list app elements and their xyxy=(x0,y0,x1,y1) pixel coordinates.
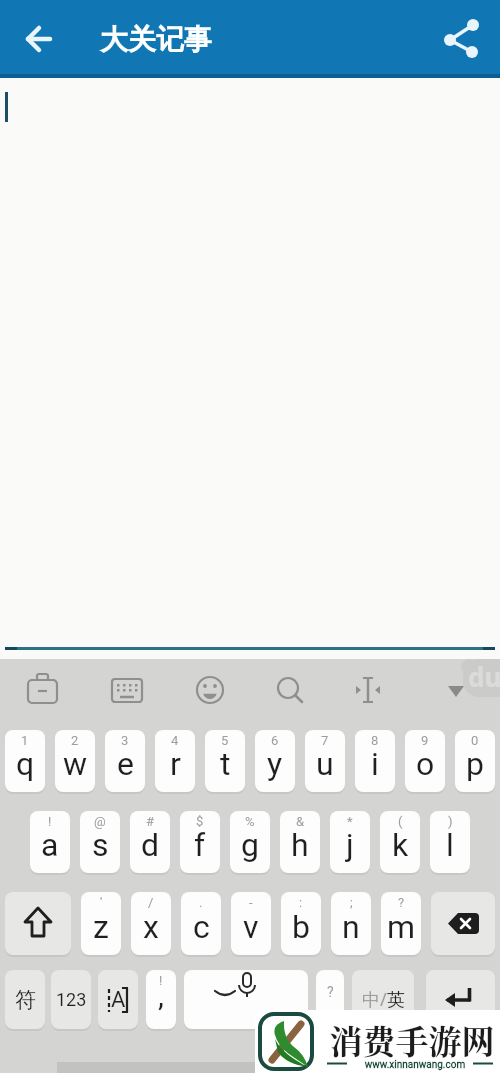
button[interactable]: ( xyxy=(380,811,420,873)
button[interactable]: ? xyxy=(316,970,344,1029)
button[interactable]: ; xyxy=(331,892,371,955)
staticText: m xyxy=(387,908,416,946)
staticText: o xyxy=(416,745,435,783)
staticText: q xyxy=(16,745,35,783)
button[interactable]: A xyxy=(98,970,138,1029)
staticText: l xyxy=(446,826,454,864)
staticText: 2 xyxy=(71,733,79,748)
button[interactable]: . xyxy=(181,892,221,955)
staticText: f xyxy=(194,826,206,864)
button[interactable]: & xyxy=(280,811,320,873)
staticText: * xyxy=(347,814,353,829)
button[interactable]: : xyxy=(281,892,321,955)
button[interactable] xyxy=(426,970,495,1029)
staticText: A xyxy=(111,987,126,1013)
button[interactable] xyxy=(186,666,234,716)
button[interactable] xyxy=(18,666,66,716)
staticText: . xyxy=(199,895,203,910)
button[interactable]: ' xyxy=(81,892,121,955)
staticText: & xyxy=(296,814,305,829)
button[interactable] xyxy=(265,666,313,716)
staticText: ? xyxy=(327,984,334,1000)
staticText: 123 xyxy=(56,989,87,1010)
staticText: 9 xyxy=(421,733,429,748)
button[interactable] xyxy=(431,892,495,955)
staticText: www.xinnanwang.com xyxy=(345,1059,485,1073)
button[interactable]: # xyxy=(130,811,170,873)
button[interactable] xyxy=(344,666,392,716)
button[interactable]: 符 xyxy=(5,970,45,1029)
staticText: 4 xyxy=(171,733,179,748)
staticText: w xyxy=(63,745,88,783)
button[interactable]: 5 xyxy=(205,730,245,792)
staticText: v xyxy=(243,908,259,946)
staticText: : xyxy=(299,895,303,910)
button[interactable] xyxy=(103,666,151,716)
staticText: b xyxy=(292,908,310,946)
staticText: 6 xyxy=(271,733,279,748)
staticText: 5 xyxy=(221,733,229,748)
staticText: % xyxy=(245,814,255,829)
button[interactable]: 6 xyxy=(255,730,295,792)
staticText: u xyxy=(316,745,334,783)
button[interactable]: / xyxy=(131,892,171,955)
button[interactable]: ? xyxy=(381,892,421,955)
staticText: 中/英 xyxy=(362,987,405,1012)
staticText: ( xyxy=(398,814,403,829)
button[interactable]: 3 xyxy=(105,730,145,792)
staticText: ? xyxy=(398,895,405,910)
staticText: s xyxy=(92,826,109,864)
staticText: r xyxy=(170,745,181,783)
button[interactable] xyxy=(432,666,480,716)
staticText: k xyxy=(392,826,409,864)
button[interactable] xyxy=(5,892,71,955)
button[interactable]: ) xyxy=(430,811,470,873)
button[interactable] xyxy=(184,970,308,1029)
staticText: j xyxy=(346,826,354,864)
staticText: 符 xyxy=(15,987,36,1013)
staticText: p xyxy=(466,745,484,783)
button[interactable]: % xyxy=(230,811,270,873)
staticText: 3 xyxy=(121,733,129,748)
staticText: d xyxy=(141,826,160,864)
staticText: g xyxy=(241,826,259,864)
staticText: z xyxy=(93,908,109,946)
button[interactable] xyxy=(436,12,492,68)
button[interactable]: 中/英 xyxy=(352,970,414,1029)
button[interactable]: @ xyxy=(80,811,120,873)
button[interactable]: 1 xyxy=(5,730,45,792)
staticText: 消费手游网 xyxy=(327,1016,497,1073)
staticText: , xyxy=(158,978,164,1013)
staticText: e xyxy=(117,745,134,783)
staticText: h xyxy=(291,826,309,864)
staticText: ! xyxy=(48,814,52,829)
staticText: ) xyxy=(448,814,453,829)
button[interactable]: $ xyxy=(180,811,220,873)
button[interactable]: 9 xyxy=(405,730,445,792)
staticText: 0 xyxy=(471,733,479,748)
staticText: 8 xyxy=(371,733,379,748)
button[interactable]: ! xyxy=(30,811,70,873)
staticText: 1 xyxy=(21,733,29,748)
staticText: # xyxy=(146,814,155,829)
button[interactable]: 2 xyxy=(55,730,95,792)
button[interactable]: 8 xyxy=(355,730,395,792)
staticText: ! xyxy=(159,973,163,988)
button[interactable]: 0 xyxy=(455,730,495,792)
staticText: i xyxy=(371,745,379,783)
button[interactable]: ! xyxy=(146,970,176,1029)
staticText: n xyxy=(342,908,360,946)
button[interactable]: * xyxy=(330,811,370,873)
staticText: @ xyxy=(94,814,106,829)
staticText: t xyxy=(220,745,231,783)
staticText: x xyxy=(143,908,159,946)
button[interactable]: 7 xyxy=(305,730,345,792)
button[interactable]: 4 xyxy=(155,730,195,792)
staticText: y xyxy=(267,745,283,783)
button[interactable] xyxy=(14,14,64,64)
button[interactable]: - xyxy=(231,892,271,955)
staticText: $ xyxy=(196,814,204,829)
button[interactable]: 123 xyxy=(51,970,91,1029)
staticText: c xyxy=(193,908,210,946)
staticText: du xyxy=(468,659,500,859)
